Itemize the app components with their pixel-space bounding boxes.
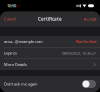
staticText: Certificate bbox=[38, 16, 62, 22]
staticText: More Details bbox=[4, 62, 27, 67]
staticText: Expires bbox=[4, 50, 17, 56]
staticText: acsa…@example.com bbox=[4, 39, 43, 44]
button[interactable]: Accept bbox=[83, 13, 97, 25]
button[interactable]: Cancel bbox=[3, 13, 17, 25]
staticText: Don't ask me again bbox=[4, 81, 37, 87]
staticText: 10:50 bbox=[7, 3, 16, 8]
button[interactable]: More Details bbox=[0, 59, 100, 70]
button[interactable]: Don't ask me again bbox=[82, 80, 96, 88]
staticText: 08/03/2023, 16:36:27 bbox=[62, 50, 96, 56]
staticText: Accept bbox=[84, 16, 96, 22]
staticText: Cancel bbox=[4, 16, 16, 22]
staticText: Not Verified bbox=[76, 39, 96, 44]
